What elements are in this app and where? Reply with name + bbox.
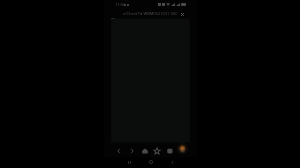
button[interactable]: Forward [126,145,137,156]
button[interactable]: More options [177,145,188,156]
button[interactable]: Stop loading [178,10,186,18]
button[interactable]: Back [168,158,176,166]
button[interactable]: Home [147,158,155,166]
staticText: s/CheckTd-WBM0621031 00C [123,11,178,16]
staticText: 11:04 [115,2,125,7]
button[interactable]: Home [139,145,150,156]
button[interactable]: Tabs [164,145,175,156]
button[interactable]: Bookmarks [151,145,162,156]
button[interactable]: Back [113,145,124,156]
button[interactable]: Recents [125,158,133,166]
